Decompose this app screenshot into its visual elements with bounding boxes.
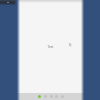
button[interactable]: Page 5: [59, 93, 65, 99]
button[interactable]: Page 1: [36, 93, 42, 99]
button[interactable]: Page 4: [53, 93, 59, 99]
button[interactable]: Page 3: [48, 93, 54, 99]
button[interactable]: Page 2: [42, 93, 48, 99]
button[interactable]: App window title: [0, 0, 17, 5]
staticText: Test: [47, 45, 54, 49]
